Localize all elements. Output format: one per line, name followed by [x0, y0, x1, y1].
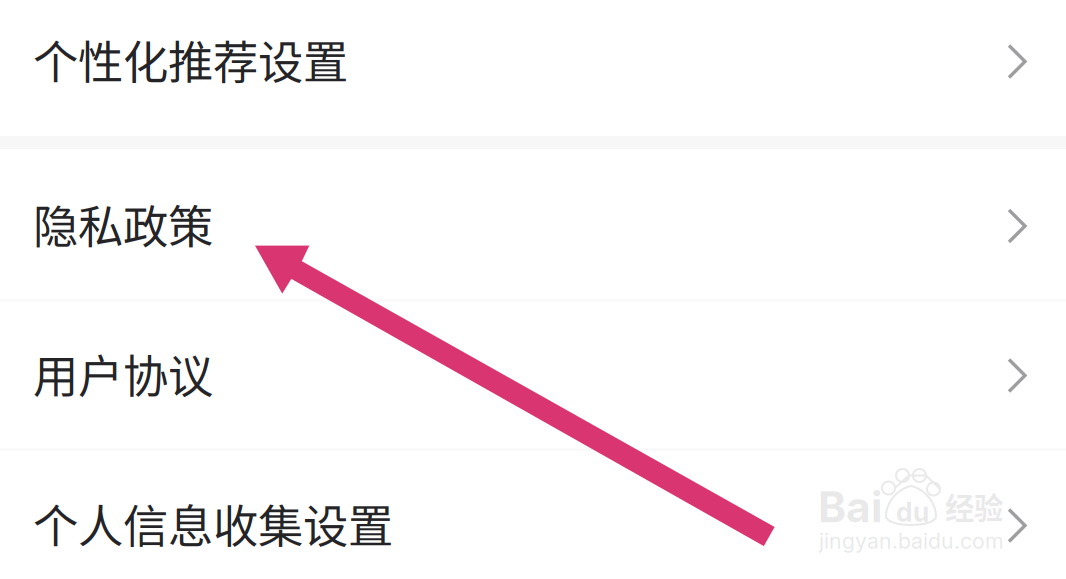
staticText: 用户协议	[33, 341, 213, 406]
staticText: Bai	[818, 481, 883, 533]
staticText: 经验	[945, 485, 1003, 527]
staticText: 隐私政策	[33, 191, 213, 257]
button[interactable]: 隐私政策	[0, 149, 1066, 299]
button[interactable]: 个人信息收集设置	[0, 449, 1066, 579]
staticText: 个性化推荐设置	[33, 27, 348, 92]
staticText: 个人信息收集设置	[33, 491, 393, 556]
staticText: jingyan.baidu.com	[819, 528, 1004, 554]
button[interactable]: 用户协议	[0, 300, 1066, 447]
staticText: du	[896, 496, 929, 528]
button[interactable]: 个性化推荐设置	[0, 0, 1066, 132]
